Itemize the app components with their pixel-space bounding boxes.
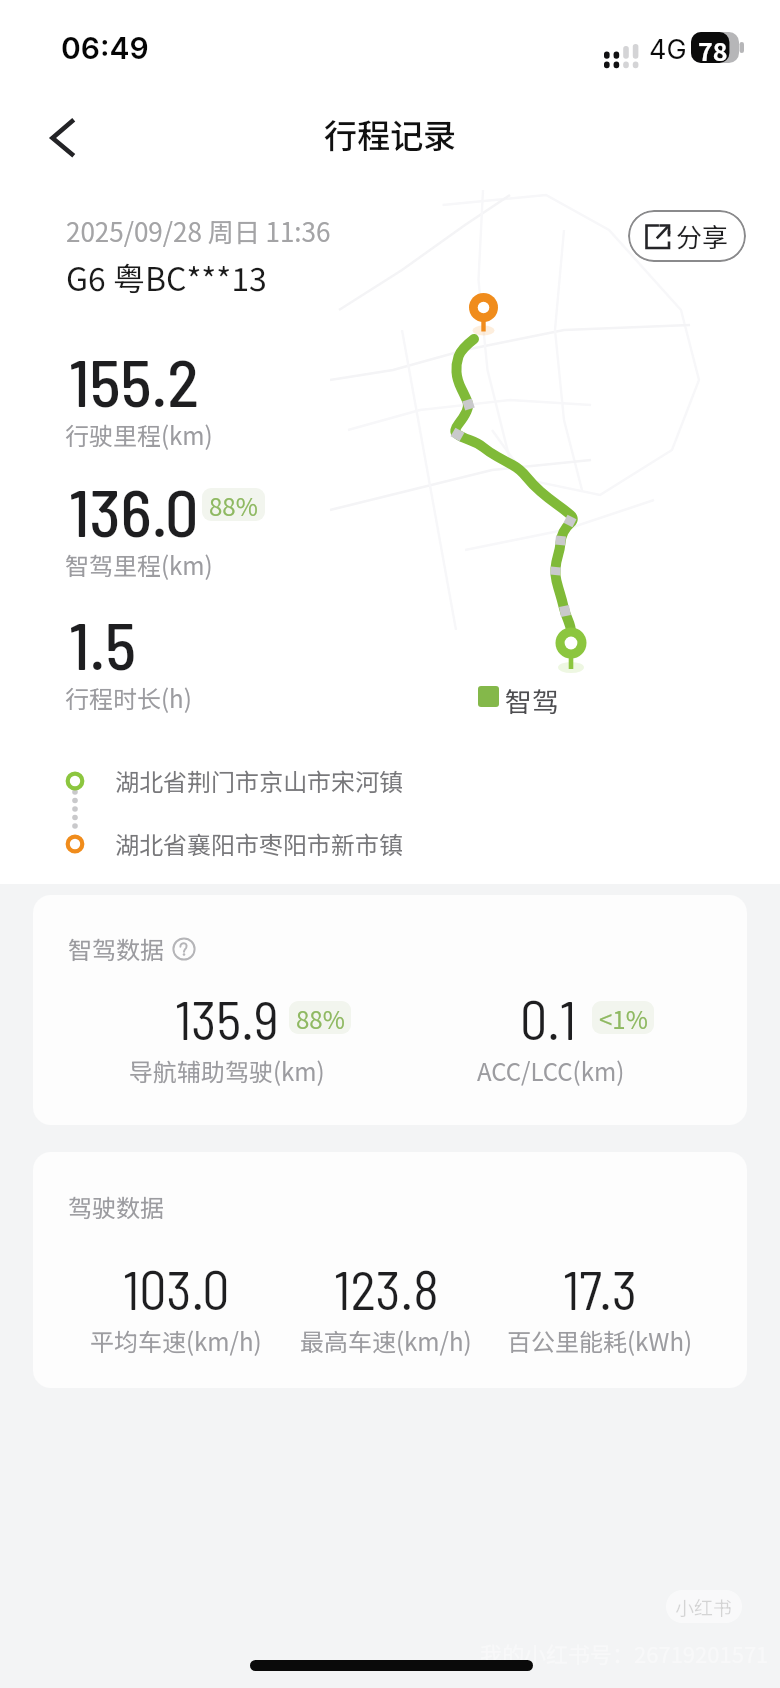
staticText: 行驶里程(km) [65,417,213,452]
staticText: 导航辅助驾驶(km) [129,1053,325,1088]
staticText: 智驾里程(km) [65,547,213,582]
staticText: 驾驶数据 [68,1189,164,1224]
button[interactable]: Back [28,106,96,174]
button[interactable]: 湖北省襄阳市枣阳市新市镇 [63,826,403,861]
staticText: 最高车速(km/h) [300,1323,472,1358]
staticText: 分享 [676,217,729,255]
staticText: 06:49 [61,30,149,66]
staticText: 78 [698,32,728,63]
button[interactable]: 驾驶数据 [33,1152,747,1388]
staticText: 2025/09/28 周日 11:36 [66,212,331,250]
staticText: 88% [209,488,258,521]
staticText: 湖北省荆门市京山市宋河镇 [115,763,403,798]
staticText: 湖北省襄阳市枣阳市新市镇 [115,826,403,861]
staticText: 135.9 [175,986,279,1051]
button[interactable]: 湖北省荆门市京山市宋河镇 [63,763,403,798]
button[interactable]: 分享 [628,210,746,262]
staticText: 1.5 [69,604,137,683]
staticText: 0.1 [520,986,577,1051]
staticText: 行程记录 [324,110,456,158]
staticText: 17.3 [563,1256,637,1321]
staticText: G6 粤BC***13 [66,254,267,300]
staticText: 平均车速(km/h) [90,1323,262,1358]
staticText: <1% [599,1001,648,1034]
staticText: 智驾数据 [68,931,164,966]
staticText: ACC/LCC(km) [477,1053,625,1088]
button[interactable]: 智驾数据 [33,895,747,1125]
staticText: 我的小红书号：26719201571 [480,1637,769,1669]
staticText: 智驾 [505,681,559,720]
staticText: 155.2 [69,341,199,420]
staticText: 行程时长(h) [65,680,192,715]
staticText: 4G [649,33,687,66]
staticText: 88% [296,1001,345,1034]
staticText: 123.8 [334,1256,439,1321]
staticText: 136.0 [69,471,199,550]
staticText: 小红书 [675,1593,733,1621]
staticText: 103.0 [123,1256,230,1321]
staticText: 百公里能耗(kWh) [507,1323,693,1358]
